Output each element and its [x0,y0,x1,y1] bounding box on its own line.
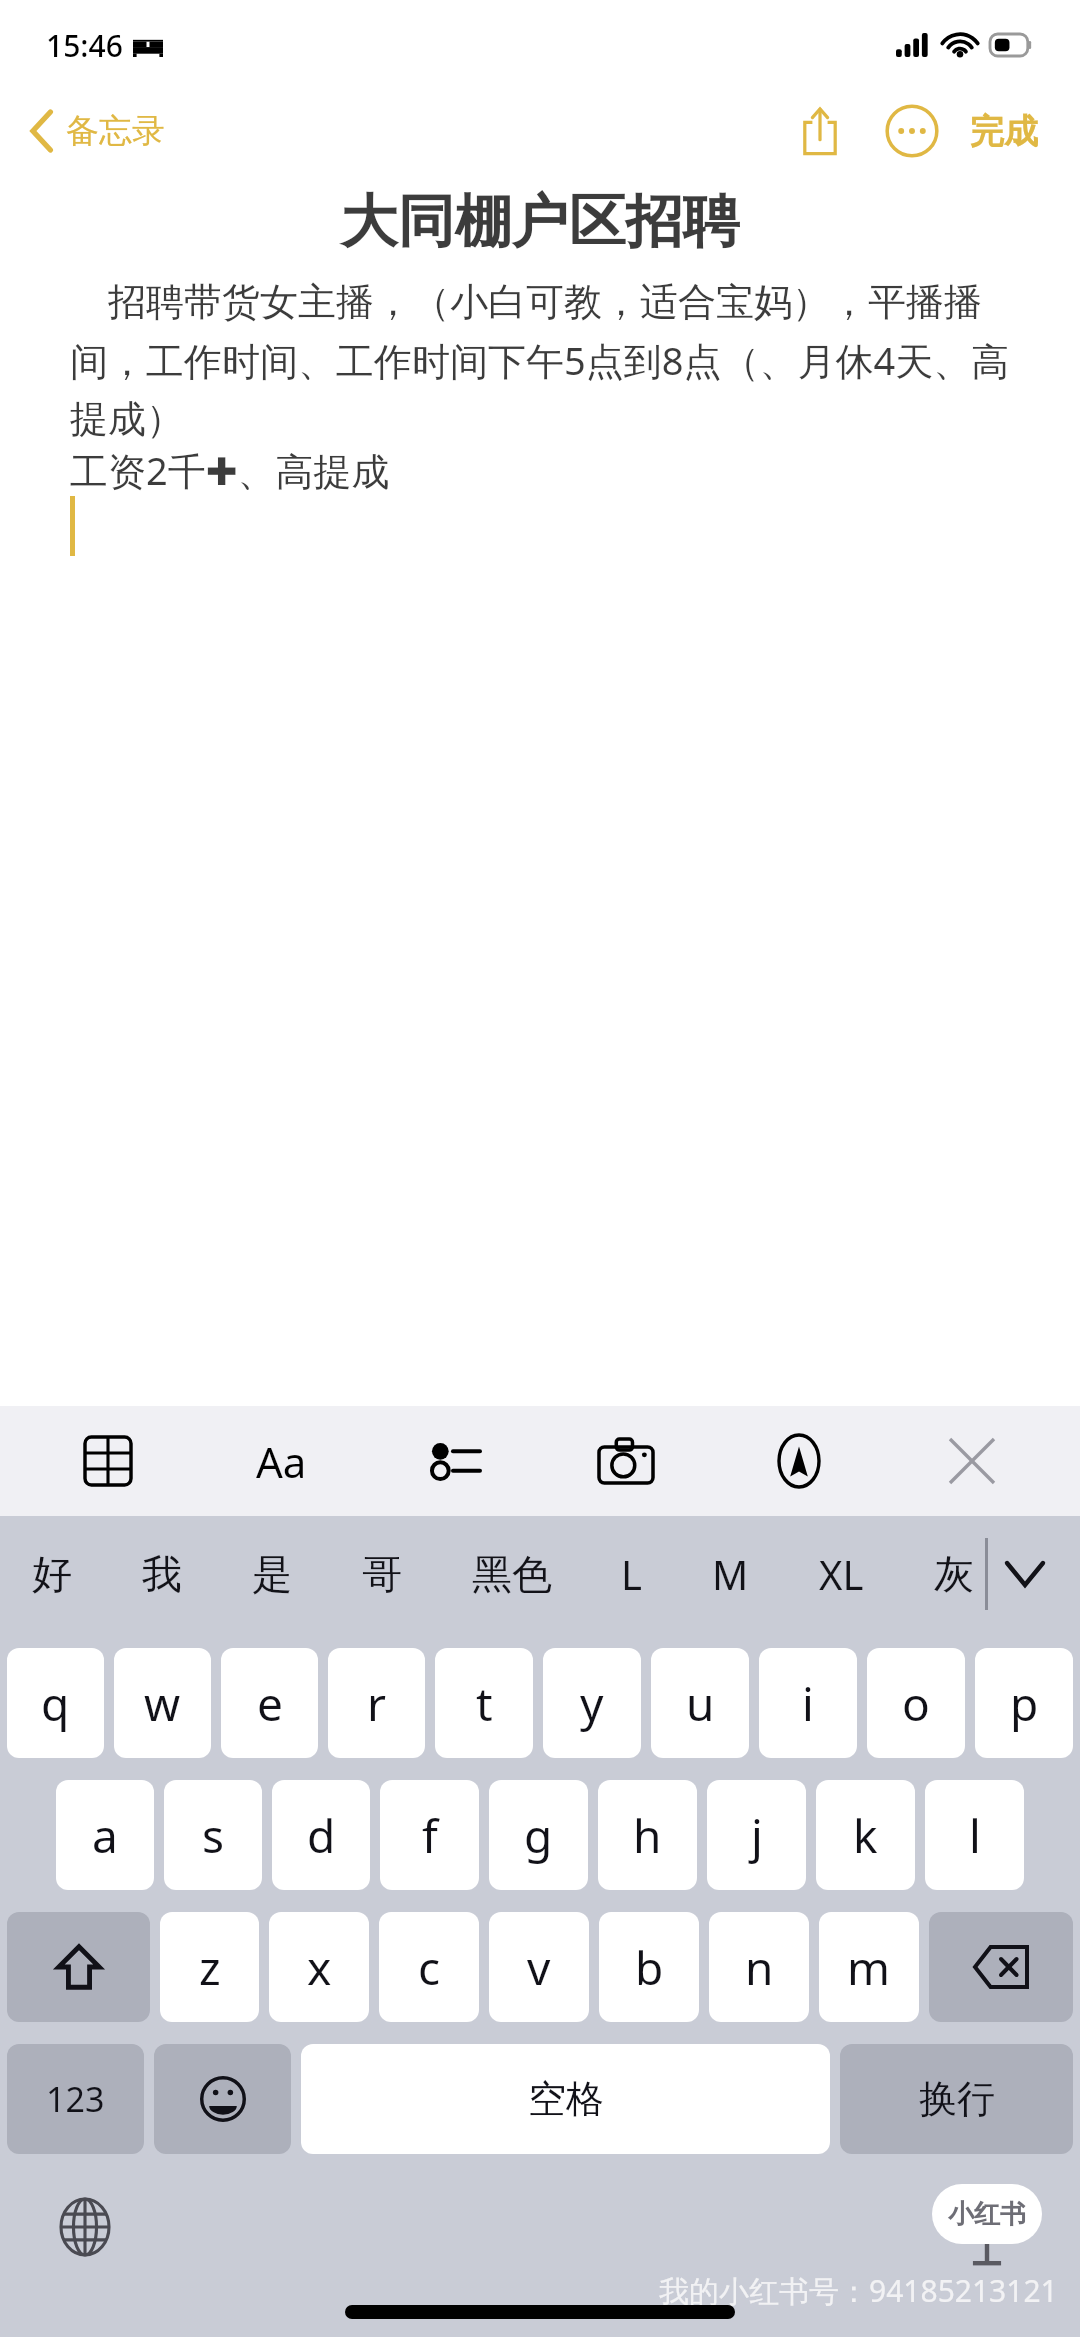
staticText: c [418,1936,441,1999]
button[interactable]: Expand candidates [990,1539,1060,1609]
staticText: z [199,1936,221,1999]
button[interactable]: u [651,1648,749,1758]
staticText: h [633,1804,662,1867]
button[interactable]: 灰 [924,1537,984,1611]
button[interactable]: x [269,1912,369,2022]
button[interactable]: e [221,1648,318,1758]
button[interactable]: 完成 [962,102,1046,161]
button[interactable]: f [380,1780,479,1890]
staticText: q [41,1672,70,1735]
button[interactable]: More [876,95,948,167]
staticText: 好 [32,1549,72,1599]
staticText: 黑色 [472,1549,552,1599]
staticText: j [751,1804,763,1867]
button[interactable]: s [164,1780,262,1890]
button[interactable]: Markup [761,1423,837,1499]
button[interactable]: m [819,1912,919,2022]
staticText: 工资2千✚、高提成 [70,444,1044,496]
button[interactable]: Checklist [416,1423,492,1499]
button[interactable]: n [709,1912,809,2022]
button[interactable]: d [272,1780,370,1890]
staticText: f [422,1804,438,1867]
button[interactable]: 123 [7,2044,144,2154]
staticText: 123 [46,2076,105,2122]
button[interactable]: c [379,1912,479,2022]
button[interactable]: l [925,1780,1024,1890]
button[interactable]: Share [784,95,856,167]
staticText: 我 [142,1549,182,1599]
button[interactable]: q [7,1648,104,1758]
staticText: 备忘录 [66,110,165,152]
button[interactable]: 黑色 [462,1537,562,1611]
button[interactable]: L [611,1535,652,1613]
button[interactable]: 哥 [352,1537,412,1611]
staticText: g [524,1804,553,1867]
staticText: u [686,1672,715,1735]
staticText: 完成 [970,110,1038,153]
staticText: 大同棚户区招聘 [40,186,1040,258]
button[interactable]: t [435,1648,533,1758]
staticText: r [367,1672,386,1735]
staticText: 哥 [362,1549,402,1599]
button[interactable]: Close [934,1423,1010,1499]
staticText: 灰 [934,1549,974,1599]
staticText: y [580,1672,604,1735]
staticText: b [635,1936,664,1999]
button[interactable]: 空格 [301,2044,830,2154]
staticText: a [92,1804,118,1867]
button[interactable]: i [759,1648,857,1758]
button[interactable]: v [489,1912,589,2022]
staticText: 招聘带货女主播，（小白可教，适合宝妈），平播播间，工作时间、工作时间下午5点到8… [70,274,1044,444]
staticText: 空格 [528,2075,604,2123]
button[interactable]: Text format [243,1423,319,1499]
button[interactable]: b [599,1912,699,2022]
button[interactable]: a [56,1780,154,1890]
staticText: XL [819,1547,864,1601]
button[interactable]: Table [70,1423,146,1499]
button[interactable]: 我 [132,1537,192,1611]
button[interactable]: Shift [7,1912,150,2022]
staticText: 小红书 [948,2198,1026,2231]
staticText: M [712,1547,749,1601]
staticText: n [745,1936,774,1999]
staticText: e [257,1672,283,1735]
staticText: 15:46 [46,25,123,66]
button[interactable]: k [816,1780,915,1890]
staticText: k [853,1804,878,1867]
staticText: p [1010,1672,1039,1735]
button[interactable]: r [328,1648,425,1758]
button[interactable]: 好 [22,1537,82,1611]
staticText: w [144,1672,181,1735]
button[interactable]: y [543,1648,641,1758]
staticText: Aa [256,1433,307,1490]
button[interactable]: 换行 [840,2044,1073,2154]
button[interactable]: j [707,1780,806,1890]
button[interactable]: w [114,1648,211,1758]
button[interactable]: Backspace [929,1912,1073,2022]
button[interactable]: Switch keyboard [50,2192,120,2262]
button[interactable]: z [160,1912,259,2022]
staticText: i [802,1672,814,1735]
staticText: d [307,1804,336,1867]
staticText: L [621,1547,642,1601]
staticText: o [902,1672,930,1735]
staticText: v [527,1936,551,1999]
staticText: m [847,1936,891,1999]
staticText: 我的小红书号：94185213121 [659,2270,1058,2311]
button[interactable]: 是 [242,1537,302,1611]
button[interactable]: h [598,1780,697,1890]
button[interactable]: p [975,1648,1073,1758]
button[interactable]: Emoji [154,2044,291,2154]
staticText: s [202,1804,225,1867]
button[interactable]: M [702,1535,759,1613]
staticText: t [476,1672,493,1735]
button[interactable]: 备忘录 [22,104,173,158]
staticText: l [969,1804,981,1867]
button[interactable]: g [489,1780,588,1890]
button[interactable]: XL [809,1535,874,1613]
staticText: 是 [252,1549,292,1599]
button[interactable]: o [867,1648,965,1758]
staticText: x [307,1936,332,1999]
staticText: 换行 [919,2075,995,2123]
button[interactable]: Camera [588,1423,664,1499]
